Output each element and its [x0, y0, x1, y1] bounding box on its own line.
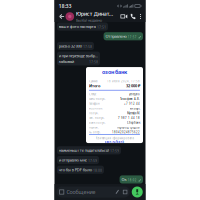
staticText: Отправлено	[105, 34, 126, 39]
staticText: озон банк	[102, 68, 127, 75]
staticText: № опер.	[89, 130, 101, 134]
staticText: Назнач.	[89, 126, 99, 129]
staticText: 7 987 1 44 18	[118, 116, 140, 120]
button[interactable]: Record voice message	[131, 186, 143, 198]
staticText: 17:59	[110, 149, 119, 153]
staticText: 18:33	[58, 2, 71, 10]
staticText: ваше фото паспорта	[59, 24, 96, 29]
staticText: Итого	[89, 83, 100, 88]
staticText: роев-о 32 000	[59, 43, 82, 49]
staticText: 18 июля 2024, 17:58	[107, 79, 140, 83]
staticText: наименьші те подателя(ься)	[59, 148, 109, 153]
staticText: Сбербанк	[127, 121, 140, 124]
staticText: 18:02	[128, 179, 137, 182]
button[interactable]: Attach file	[115, 189, 120, 195]
staticText: 32 000 ₽	[126, 83, 140, 88]
staticText: Квитанция сформирована	[95, 136, 133, 140]
staticText: 18:00	[93, 169, 102, 172]
staticText: забывай	[59, 59, 74, 64]
staticText: ФИО получ.	[89, 97, 106, 101]
staticText: и при переводе выбрать сбор не	[59, 53, 98, 58]
staticText: Тимофеев А.В.	[120, 97, 140, 101]
button[interactable]: More options	[137, 11, 143, 22]
staticText: Юрист Динат…	[76, 10, 113, 17]
staticText: Тел. получ.	[89, 116, 105, 120]
staticText: Сумма	[89, 79, 97, 83]
staticText: 17:57	[128, 35, 137, 39]
staticText: 17:51	[97, 26, 106, 29]
staticText: 17:58	[83, 45, 92, 49]
staticText: что бы в PDF было	[59, 167, 92, 172]
staticText: Источник	[89, 107, 102, 110]
staticText: Сообщение	[66, 188, 95, 196]
staticText: Банк получ.	[89, 121, 106, 124]
staticText: Перевод средств	[117, 126, 140, 129]
staticText: Получ.	[89, 111, 99, 115]
staticText: ozon.ru/bank	[104, 140, 124, 144]
staticText: Ок	[121, 177, 126, 182]
button[interactable]: Call	[128, 11, 137, 22]
button[interactable]: Stickers	[59, 189, 65, 195]
staticText: +7 912 44	[124, 102, 140, 105]
staticText: 17:58	[89, 60, 98, 64]
staticText: Телефон	[89, 102, 100, 105]
staticText: 18042024875622	[112, 130, 140, 134]
staticText: Ак Барс	[130, 107, 140, 110]
staticText: Мустафа М.	[127, 111, 140, 115]
button[interactable]: Video call	[119, 11, 128, 22]
button[interactable]: Scan	[123, 189, 128, 195]
staticText: успешно	[129, 92, 140, 96]
staticText: 17:59	[88, 159, 97, 163]
staticText: и отправлю мне	[59, 157, 87, 163]
staticText: был(а) недавно	[76, 17, 102, 23]
button[interactable]: Back	[56, 11, 65, 22]
staticText: Статус	[89, 92, 96, 96]
